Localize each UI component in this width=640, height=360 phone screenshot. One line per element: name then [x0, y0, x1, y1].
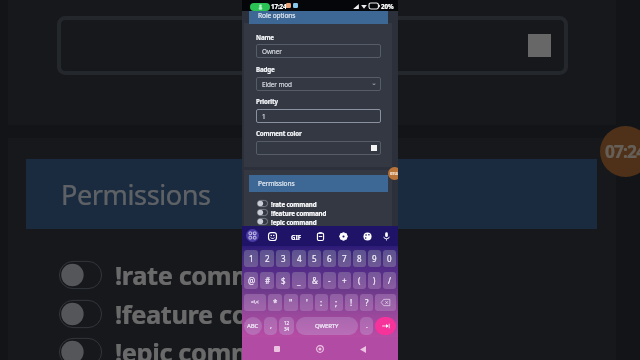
staticText: 5 — [312, 253, 317, 264]
button[interactable]: 6 — [323, 250, 336, 267]
staticText: & — [312, 275, 318, 286]
staticText: 6 — [327, 253, 332, 264]
staticText: _ — [297, 275, 301, 286]
button[interactable] — [256, 141, 381, 155]
button[interactable]: # — [260, 272, 274, 289]
staticText: =\< — [251, 299, 259, 306]
button[interactable]: Recording timer — [388, 167, 398, 180]
staticText: !rate command — [115, 258, 303, 293]
button[interactable]: , — [264, 317, 277, 335]
staticText: 1 — [262, 112, 266, 121]
button[interactable]: Permissions — [249, 175, 388, 192]
button[interactable]: !feature command — [59, 295, 640, 333]
button[interactable]: !rate command — [257, 199, 398, 208]
staticText: Name — [256, 33, 274, 41]
button[interactable]: 3 — [276, 250, 290, 267]
staticText: ' — [306, 297, 308, 308]
button[interactable]: 1 — [244, 250, 258, 267]
button[interactable]: QWERTY — [296, 317, 358, 335]
button[interactable]: !epic command — [257, 217, 398, 226]
button[interactable]: Enter — [375, 317, 396, 335]
staticText: 7 — [342, 253, 347, 264]
button[interactable]: Permissions — [26, 159, 597, 229]
staticText: $ — [281, 275, 286, 286]
button[interactable]: $ — [276, 272, 290, 289]
staticText: 12 — [284, 320, 290, 326]
button[interactable]: Numbers — [279, 317, 294, 335]
staticText: 2 — [265, 253, 270, 264]
button[interactable]: 5 — [308, 250, 321, 267]
button[interactable]: Back — [355, 341, 371, 357]
staticText: 9 — [372, 253, 377, 264]
button[interactable]: * — [268, 294, 282, 311]
staticText: 34 — [284, 326, 290, 332]
staticText: * — [273, 297, 278, 308]
button[interactable]: - — [323, 272, 336, 289]
button[interactable]: 7 — [338, 250, 351, 267]
button[interactable] — [57, 16, 568, 75]
button[interactable]: Theme — [361, 230, 374, 243]
button[interactable]: Owner — [256, 44, 381, 58]
staticText: ( — [358, 275, 361, 286]
button[interactable]: =\< — [244, 294, 266, 311]
button[interactable]: Role options — [249, 7, 388, 24]
staticText: 20% — [381, 2, 394, 10]
staticText: # — [265, 275, 270, 286]
button[interactable]: Recording timer — [600, 126, 640, 177]
button[interactable]: !rate command — [59, 256, 640, 294]
button[interactable]: Stickers — [266, 230, 279, 243]
staticText: Priority — [256, 97, 278, 105]
button[interactable]: Recents — [269, 341, 285, 357]
button[interactable]: Home — [312, 341, 328, 357]
button[interactable]: + — [338, 272, 351, 289]
button[interactable]: ABC — [244, 317, 262, 335]
button[interactable]: & — [308, 272, 321, 289]
button[interactable]: _ — [292, 272, 306, 289]
staticText: ! — [350, 297, 353, 308]
button[interactable]: ? — [360, 294, 373, 311]
button[interactable]: ( — [353, 272, 366, 289]
button[interactable]: !feature command — [257, 208, 398, 217]
staticText: ? — [365, 297, 369, 308]
staticText: . — [366, 321, 368, 331]
staticText: Permissions — [258, 179, 295, 188]
staticText: Role options — [258, 11, 296, 20]
button[interactable]: ; — [330, 294, 343, 311]
button[interactable]: Elder mod — [256, 77, 381, 91]
staticText: QWERTY — [315, 322, 339, 330]
button[interactable]: 1 — [256, 109, 381, 123]
button[interactable]: ! — [345, 294, 358, 311]
button[interactable]: Keyboard modes — [246, 229, 259, 242]
button[interactable]: 4 — [292, 250, 306, 267]
button[interactable]: !epic command — [59, 333, 640, 360]
button[interactable]: 8 — [353, 250, 366, 267]
button[interactable]: @ — [244, 272, 258, 289]
button[interactable]: / — [383, 272, 396, 289]
staticText: 17:24 — [271, 2, 287, 10]
button[interactable]: Voice input — [380, 230, 393, 243]
staticText: !epic command — [115, 335, 302, 360]
staticText: !feature command — [115, 297, 343, 332]
staticText: @ — [248, 275, 255, 286]
button[interactable]: 2 — [260, 250, 274, 267]
button[interactable]: " — [284, 294, 298, 311]
button[interactable]: 9 — [368, 250, 381, 267]
button[interactable]: ' — [300, 294, 313, 311]
staticText: Owner — [262, 47, 282, 56]
button[interactable]: 0 — [383, 250, 396, 267]
button[interactable]: ) — [368, 272, 381, 289]
staticText: 0 — [387, 253, 392, 264]
button[interactable]: Backspace — [375, 294, 396, 311]
button[interactable]: GIF — [289, 230, 303, 243]
staticText: 4 — [297, 253, 302, 264]
staticText: Comment color — [256, 129, 302, 137]
staticText: + — [342, 275, 347, 286]
staticText: Elder mod — [262, 80, 292, 89]
staticText: - — [328, 275, 331, 286]
button[interactable]: Clipboard — [314, 230, 327, 243]
button[interactable]: . — [360, 317, 373, 335]
button[interactable]: Settings — [337, 230, 350, 243]
staticText: 07:24 — [605, 140, 640, 163]
button[interactable]: : — [315, 294, 328, 311]
